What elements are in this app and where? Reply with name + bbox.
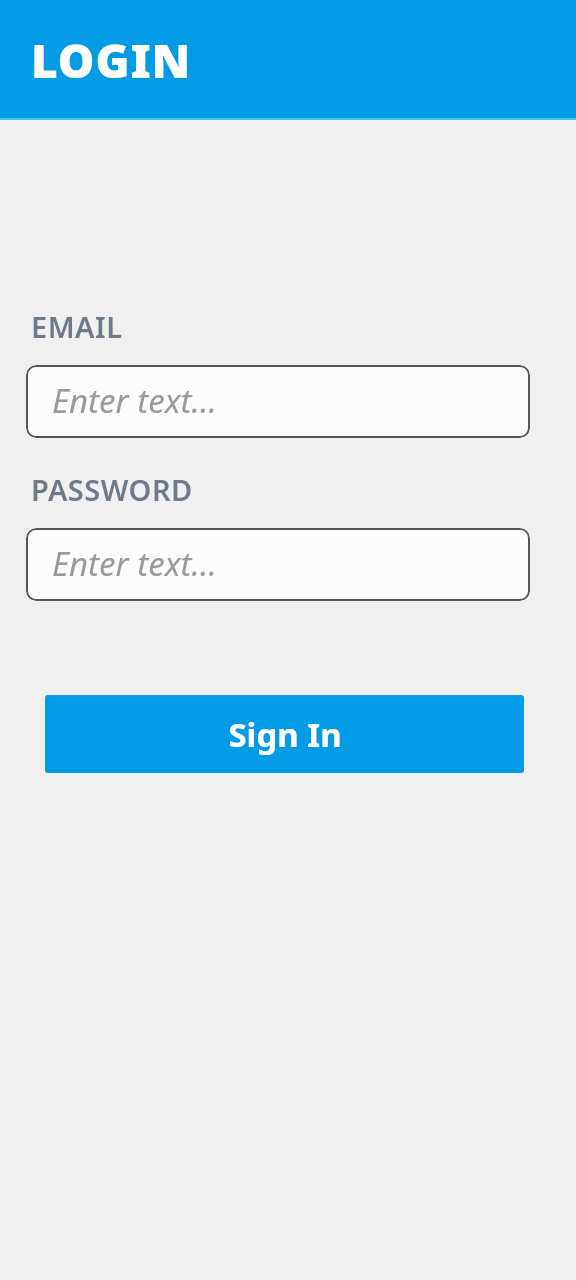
- staticText: Enter text...: [52, 378, 217, 423]
- button[interactable]: Enter text: [26, 528, 530, 601]
- button[interactable]: Sign In: [45, 695, 524, 773]
- staticText: Enter text...: [52, 541, 217, 586]
- staticText: Sign In: [228, 712, 342, 757]
- staticText: EMAIL: [31, 307, 123, 346]
- staticText: PASSWORD: [31, 470, 193, 509]
- staticText: LOGIN: [31, 29, 192, 92]
- button[interactable]: Enter text: [26, 365, 530, 438]
